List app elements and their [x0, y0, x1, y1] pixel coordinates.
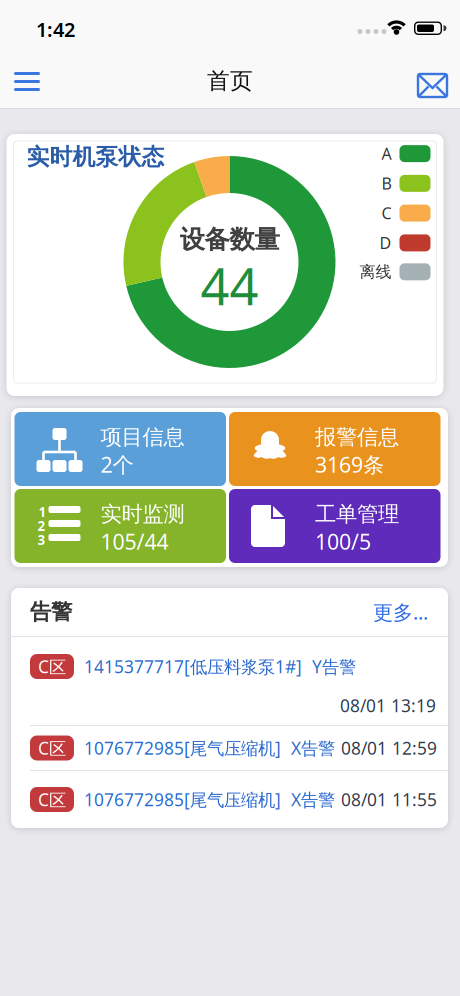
button[interactable]: 工单管理	[229, 489, 440, 563]
staticText: 1:42	[36, 16, 75, 43]
staticText: 44	[200, 252, 258, 319]
staticText: 实时监测	[100, 501, 184, 527]
staticText: 2	[37, 517, 45, 535]
staticText: 08/01 11:55	[341, 788, 437, 811]
button[interactable]: 菜单	[0, 54, 54, 108]
button[interactable]: 1	[14, 489, 226, 563]
staticText: D	[379, 232, 391, 253]
staticText: 告警	[30, 599, 72, 625]
staticText: C区	[38, 788, 66, 811]
button[interactable]: C区	[11, 726, 448, 770]
staticText: 实时机泵状态	[26, 143, 164, 171]
staticText: A	[381, 143, 391, 164]
staticText: 更多...	[373, 599, 428, 625]
button[interactable]: C区	[11, 771, 448, 828]
button[interactable]: C区	[11, 637, 448, 725]
staticText: 3169条	[315, 450, 384, 478]
staticText: 08/01 13:19	[340, 694, 436, 717]
staticText: 105/44	[100, 527, 168, 555]
staticText: 2个	[100, 450, 133, 478]
staticText: 1415377717[低压料浆泵1#] Y告警	[84, 655, 356, 678]
staticText: C	[381, 202, 391, 224]
staticText: C区	[38, 736, 66, 759]
staticText: 工单管理	[315, 501, 399, 527]
button[interactable]: 报警信息	[229, 412, 440, 486]
staticText: C区	[38, 655, 66, 678]
staticText: 3	[37, 531, 45, 549]
staticText: 08/01 12:59	[341, 736, 437, 759]
staticText: 1076772985[尾气压缩机] X告警	[84, 788, 335, 811]
staticText: 设备数量	[179, 224, 279, 255]
staticText: B	[381, 173, 391, 194]
staticText: 100/5	[315, 527, 371, 555]
staticText: 报警信息	[315, 424, 399, 450]
button[interactable]: 消息	[0, 54, 460, 108]
staticText: 1	[38, 503, 46, 521]
staticText: 首页	[207, 67, 253, 95]
button[interactable]: 更多...	[373, 599, 428, 625]
staticText: 1076772985[尾气压缩机] X告警	[84, 736, 335, 759]
staticText: 离线	[359, 262, 391, 282]
button[interactable]: 项目信息	[14, 412, 226, 486]
staticText: 项目信息	[100, 424, 184, 450]
